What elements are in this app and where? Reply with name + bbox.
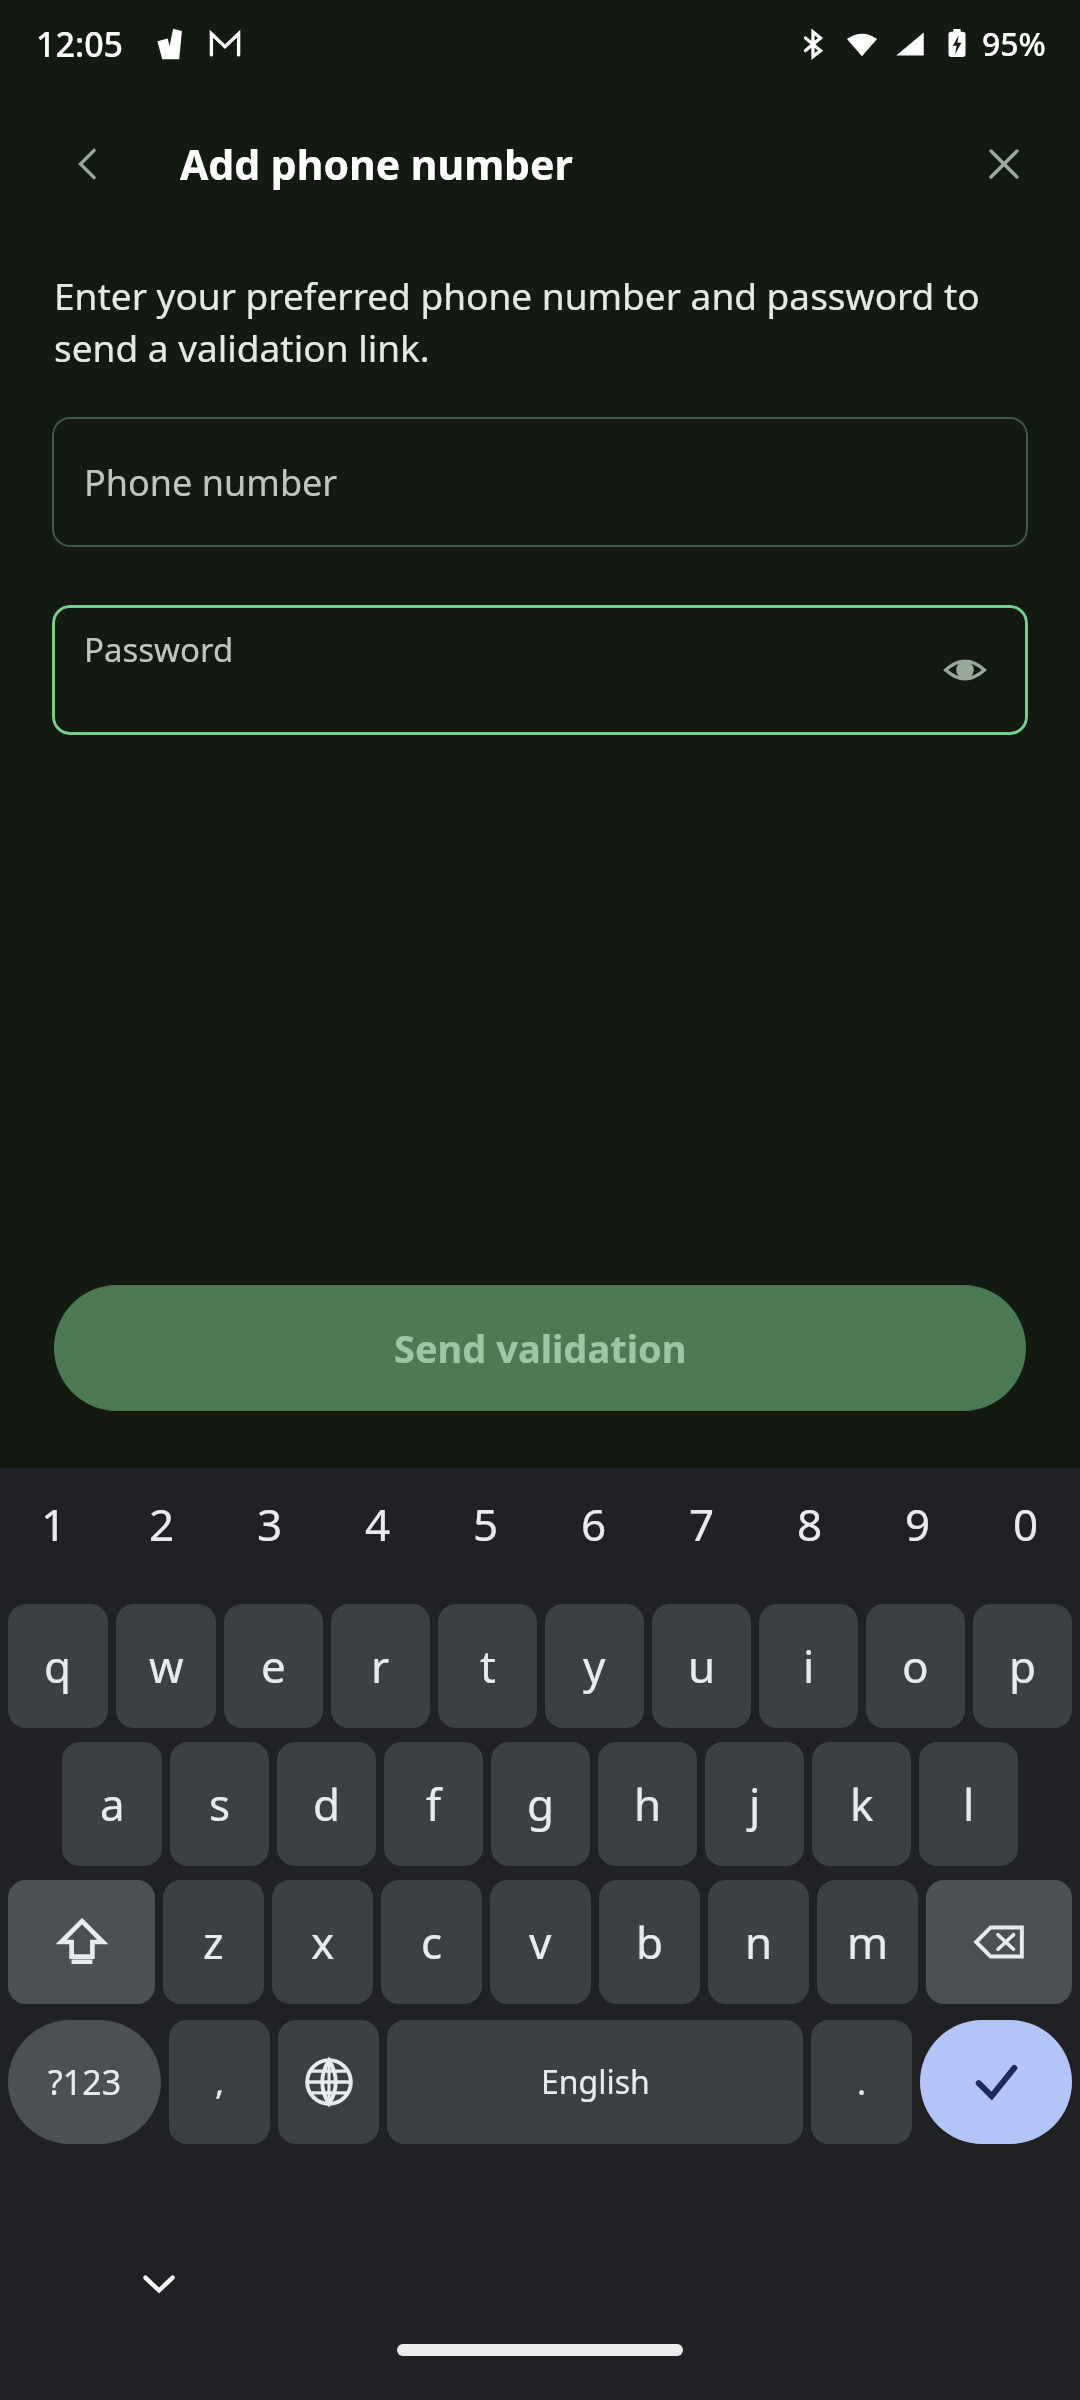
staticText: h	[634, 1774, 662, 1834]
button[interactable]: o	[866, 1604, 965, 1728]
staticText: k	[850, 1774, 874, 1834]
button[interactable]: ?123	[8, 2020, 161, 2144]
button[interactable]: b	[599, 1880, 700, 2004]
staticText: z	[203, 1912, 224, 1972]
staticText: m	[847, 1912, 889, 1972]
button[interactable]: j	[705, 1742, 804, 1866]
button[interactable]: 0	[972, 1468, 1080, 1580]
staticText: u	[688, 1636, 716, 1696]
staticText: 2	[149, 1494, 175, 1554]
button[interactable]: Back	[56, 132, 120, 196]
button[interactable]: z	[163, 1880, 264, 2004]
staticText: ,	[215, 2059, 225, 2105]
button[interactable]: n	[708, 1880, 809, 2004]
staticText: 3	[257, 1494, 283, 1554]
button[interactable]: Show password	[930, 635, 1000, 705]
staticText: b	[636, 1912, 664, 1972]
staticText: ?123	[48, 2059, 122, 2105]
staticText: q	[44, 1636, 72, 1696]
staticText: 8	[797, 1494, 823, 1554]
staticText: 7	[689, 1494, 715, 1554]
button[interactable]: 7	[648, 1468, 756, 1580]
button[interactable]: m	[817, 1880, 918, 2004]
staticText: v	[529, 1912, 552, 1972]
staticText: a	[100, 1774, 125, 1834]
button[interactable]: Backspace	[926, 1880, 1072, 2004]
button[interactable]: Change language	[278, 2020, 379, 2144]
button[interactable]: 6	[540, 1468, 648, 1580]
button[interactable]: 8	[756, 1468, 864, 1580]
staticText: Phone number	[84, 458, 338, 507]
staticText: Add phone number	[180, 136, 573, 192]
button[interactable]: t	[438, 1604, 537, 1728]
button[interactable]: k	[812, 1742, 911, 1866]
button[interactable]: l	[919, 1742, 1018, 1866]
staticText: t	[480, 1636, 496, 1696]
button[interactable]: i	[759, 1604, 858, 1728]
staticText: .	[857, 2059, 867, 2105]
staticText: 12:05	[36, 21, 124, 67]
button[interactable]: c	[381, 1880, 482, 2004]
staticText: Enter your preferred phone number and pa…	[54, 270, 1026, 373]
staticText: 5	[473, 1494, 499, 1554]
button[interactable]: y	[545, 1604, 644, 1728]
button[interactable]: Close	[972, 132, 1036, 196]
button[interactable]: Enter	[920, 2020, 1072, 2144]
staticText: 1	[41, 1494, 67, 1554]
staticText: s	[209, 1774, 231, 1834]
button[interactable]: h	[598, 1742, 697, 1866]
button[interactable]: 2	[108, 1468, 216, 1580]
button[interactable]: g	[491, 1742, 590, 1866]
button[interactable]: Phone number	[52, 417, 1028, 547]
button[interactable]: a	[62, 1742, 162, 1866]
staticText: Send validation	[394, 1322, 687, 1374]
staticText: 0	[1013, 1494, 1039, 1554]
staticText: English	[541, 2060, 650, 2104]
staticText: r	[371, 1636, 390, 1696]
button[interactable]: ,	[169, 2020, 270, 2144]
button[interactable]: u	[652, 1604, 751, 1728]
staticText: i	[803, 1636, 815, 1696]
button[interactable]: q	[8, 1604, 108, 1728]
staticText: Password	[84, 627, 234, 672]
button[interactable]: .	[811, 2020, 912, 2144]
button[interactable]: e	[224, 1604, 323, 1728]
staticText: f	[426, 1774, 442, 1834]
button[interactable]: w	[116, 1604, 216, 1728]
button[interactable]: 5	[432, 1468, 540, 1580]
button[interactable]: x	[272, 1880, 373, 2004]
button[interactable]: v	[490, 1880, 591, 2004]
staticText: p	[1009, 1636, 1037, 1696]
button[interactable]: Password	[52, 605, 1028, 735]
button[interactable]: Send validation	[54, 1285, 1026, 1411]
button[interactable]: 1	[0, 1468, 108, 1580]
staticText: n	[745, 1912, 773, 1972]
button[interactable]: r	[331, 1604, 430, 1728]
staticText: d	[313, 1774, 341, 1834]
staticText: 6	[581, 1494, 607, 1554]
staticText: 95%	[982, 22, 1046, 66]
staticText: 4	[365, 1494, 391, 1554]
staticText: c	[421, 1912, 443, 1972]
staticText: j	[749, 1774, 761, 1834]
button[interactable]: d	[277, 1742, 376, 1866]
staticText: 9	[905, 1494, 931, 1554]
staticText: x	[311, 1912, 335, 1972]
button[interactable]: 3	[216, 1468, 324, 1580]
button[interactable]: 4	[324, 1468, 432, 1580]
button[interactable]: f	[384, 1742, 483, 1866]
staticText: l	[963, 1774, 975, 1834]
staticText: w	[149, 1636, 184, 1696]
button[interactable]: Shift	[8, 1880, 155, 2004]
button[interactable]: s	[170, 1742, 269, 1866]
button[interactable]: English	[387, 2020, 803, 2144]
staticText: o	[902, 1636, 929, 1696]
staticText: e	[261, 1636, 286, 1696]
staticText: g	[527, 1774, 555, 1834]
staticText: y	[583, 1636, 606, 1696]
button[interactable]: p	[973, 1604, 1072, 1728]
button[interactable]: 9	[864, 1468, 972, 1580]
button[interactable]: Hide keyboard	[124, 2248, 194, 2318]
